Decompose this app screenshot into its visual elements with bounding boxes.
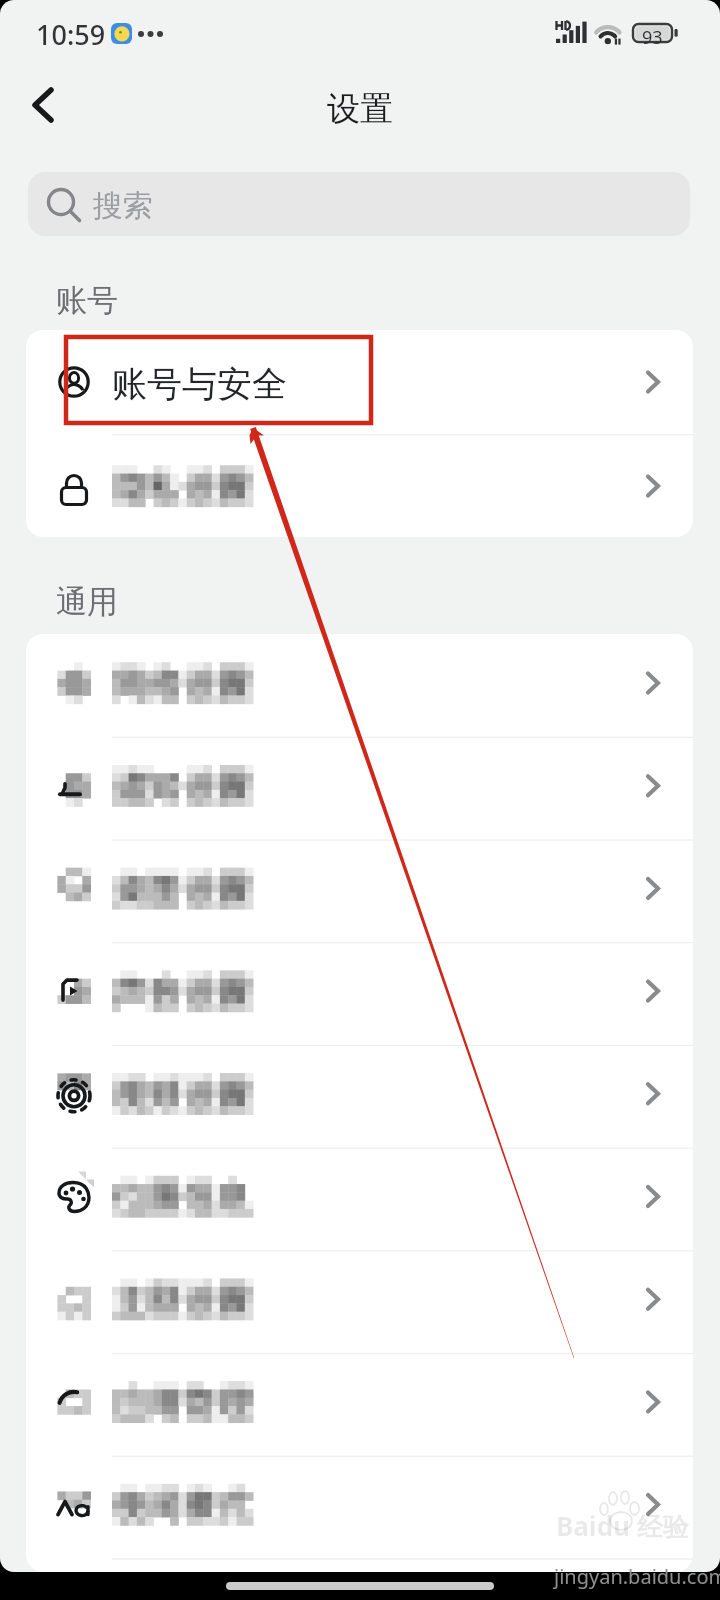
button[interactable] (26, 942, 693, 1044)
button[interactable] (26, 839, 693, 941)
button[interactable] (26, 1148, 693, 1250)
staticText: 设置 (0, 88, 720, 130)
staticText: 搜索 (93, 187, 153, 225)
staticText: Baidu 经验 (556, 1508, 689, 1544)
button[interactable] (26, 434, 693, 537)
staticText: 通用 (56, 582, 118, 621)
button[interactable] (26, 1045, 693, 1147)
button[interactable] (26, 1353, 693, 1455)
button[interactable] (26, 634, 693, 736)
button[interactable] (26, 330, 693, 434)
button[interactable] (26, 1250, 693, 1352)
button[interactable] (26, 737, 693, 839)
button[interactable]: 搜索 (28, 172, 690, 236)
staticText: 93 (642, 25, 663, 50)
staticText: jingyan.baidu.com (554, 1563, 720, 1590)
button[interactable] (26, 1456, 693, 1558)
button[interactable]: Back (14, 76, 72, 134)
staticText: 10:59 (36, 16, 106, 53)
staticText: 账号 (56, 281, 118, 320)
staticText: 账号与安全 (112, 362, 287, 406)
